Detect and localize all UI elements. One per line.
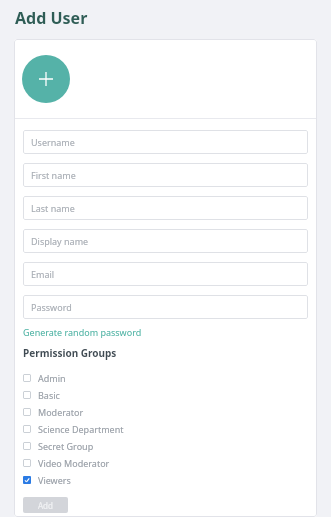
staticText: Moderator <box>38 406 84 418</box>
button[interactable]: Display name <box>23 229 308 253</box>
button[interactable]: Secret Group <box>23 437 308 454</box>
button[interactable]: Science Department <box>23 420 308 437</box>
staticText: Add User <box>15 7 88 29</box>
button[interactable]: Username <box>23 130 308 154</box>
button[interactable]: Viewers <box>23 471 308 488</box>
staticText: Last name <box>31 202 75 214</box>
staticText: Password <box>31 301 72 313</box>
staticText: First name <box>31 169 76 181</box>
button[interactable]: Email <box>23 262 308 286</box>
button[interactable]: Last name <box>23 196 308 220</box>
button[interactable]: Moderator <box>23 403 308 420</box>
button[interactable]: First name <box>23 163 308 187</box>
button[interactable]: Add profile photo <box>22 55 70 103</box>
staticText: Generate random password <box>23 326 142 338</box>
staticText: Science Department <box>38 423 124 435</box>
staticText: Add <box>38 500 53 511</box>
staticText: Admin <box>38 372 66 384</box>
button[interactable]: Password <box>23 295 308 319</box>
button[interactable]: Add <box>23 497 68 513</box>
staticText: Permission Groups <box>23 346 117 360</box>
staticText: Username <box>31 136 75 148</box>
staticText: Viewers <box>38 474 71 486</box>
staticText: Basic <box>38 389 60 401</box>
button[interactable]: Admin <box>23 369 308 386</box>
button[interactable]: Generate random password <box>23 326 142 338</box>
button[interactable]: Video Moderator <box>23 454 308 471</box>
button[interactable]: Basic <box>23 386 308 403</box>
staticText: Secret Group <box>38 440 94 452</box>
staticText: Video Moderator <box>38 457 110 469</box>
staticText: Display name <box>31 235 89 247</box>
staticText: Email <box>31 268 55 280</box>
